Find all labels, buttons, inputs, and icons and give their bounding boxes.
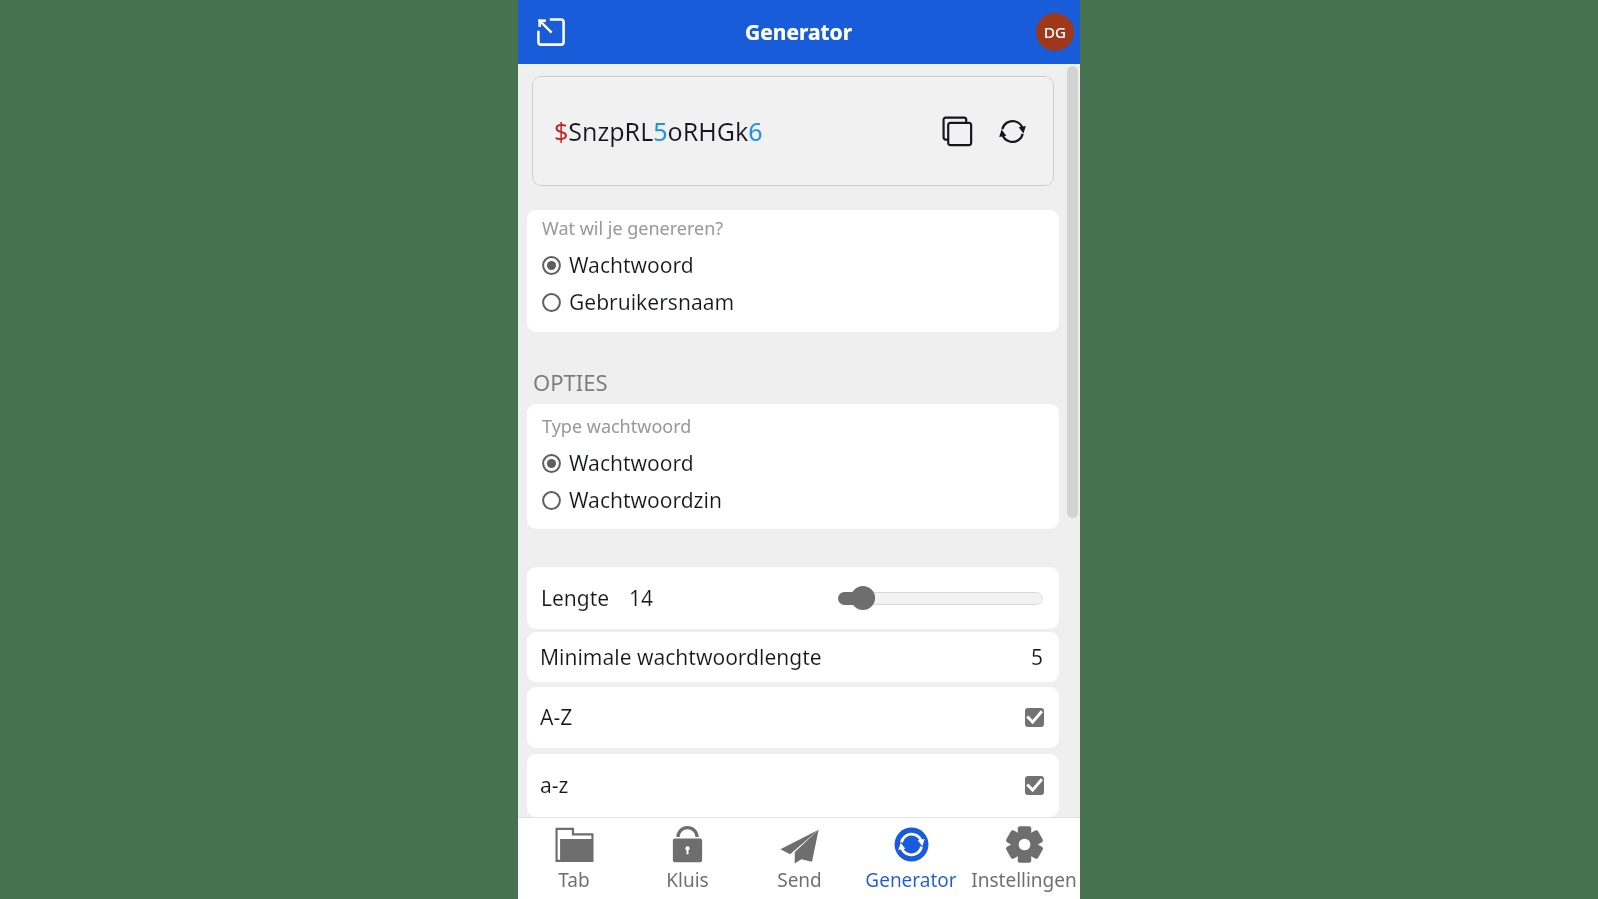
button[interactable]: Instellingen — [968, 818, 1080, 899]
staticText: A-Z — [540, 703, 573, 732]
staticText: a-z — [540, 771, 569, 800]
staticText: OPTIES — [533, 367, 608, 397]
staticText: Wachtwoord — [569, 449, 694, 478]
staticText: Generator — [865, 867, 957, 893]
button[interactable]: Kluis — [631, 818, 743, 899]
button[interactable]: Account — [1036, 13, 1074, 51]
staticText: 14 — [629, 584, 654, 613]
button[interactable]: Open in new window — [529, 10, 573, 54]
staticText: Send — [777, 867, 822, 893]
button[interactable]: Wachtwoord — [542, 247, 1059, 284]
staticText: Minimale wachtwoordlengte — [540, 643, 822, 672]
staticText: Type wachtwoord — [542, 414, 692, 439]
button[interactable]: Wachtwoord — [542, 445, 1059, 482]
staticText: Wachtwoord — [569, 251, 694, 280]
button[interactable]: Send — [743, 818, 855, 899]
staticText: $SnzpRL5oRHGk6 — [554, 114, 763, 148]
staticText: Gebruikersnaam — [569, 288, 735, 317]
staticText: Tab — [558, 867, 590, 893]
staticText: Kluis — [666, 867, 709, 893]
button[interactable]: Copy — [935, 109, 979, 153]
button[interactable]: Lengte — [527, 567, 1059, 629]
staticText: Wat wil je genereren? — [542, 216, 724, 241]
staticText: 5 — [1031, 643, 1044, 672]
button[interactable]: Wachtwoordzin — [542, 482, 1059, 519]
staticText: Wachtwoordzin — [569, 486, 722, 515]
button[interactable]: Minimale wachtwoordlengte — [527, 632, 1059, 682]
button[interactable]: Gebruikersnaam — [542, 284, 1059, 321]
staticText: DG — [1044, 22, 1066, 42]
staticText: Instellingen — [971, 867, 1077, 893]
staticText: Lengte — [541, 584, 610, 613]
button[interactable]: a-z — [527, 754, 1059, 817]
staticText: Generator — [745, 18, 853, 47]
button[interactable]: Generator — [855, 818, 967, 899]
button[interactable]: Tab — [518, 818, 630, 899]
button[interactable]: Regenerate — [990, 109, 1034, 153]
button[interactable]: A-Z — [527, 687, 1059, 748]
